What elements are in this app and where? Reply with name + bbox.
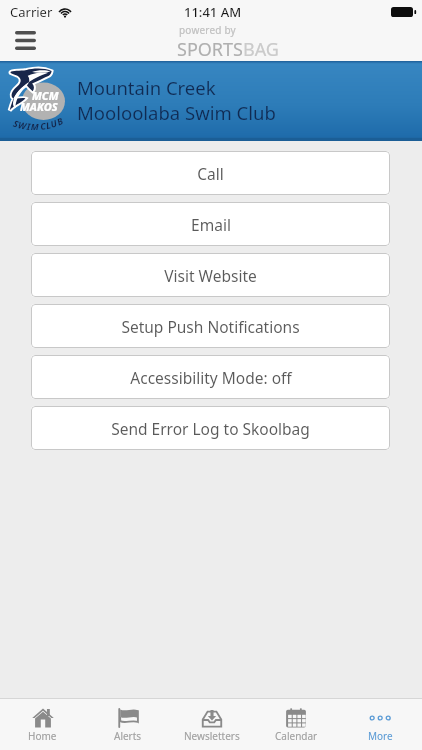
staticText: 11:41 AM xyxy=(184,3,242,21)
button[interactable]: More xyxy=(338,699,422,750)
staticText: Accessibility Mode: off xyxy=(130,367,292,388)
staticText: Setup Push Notifications xyxy=(121,316,300,337)
staticText: Mountain Creek xyxy=(77,75,216,100)
staticText: Call xyxy=(197,163,224,184)
button[interactable]: Call xyxy=(31,151,390,195)
staticText: Home xyxy=(28,729,57,743)
staticText: SPORTS xyxy=(177,37,243,62)
button[interactable]: Setup Push Notifications xyxy=(31,304,390,348)
button[interactable]: Send Error Log to Skoolbag xyxy=(31,406,390,450)
button[interactable]: Email xyxy=(31,202,390,246)
staticText: Newsletters xyxy=(184,729,240,743)
staticText: Mooloolaba Swim Club xyxy=(77,100,276,125)
button[interactable]: Newsletters xyxy=(170,699,254,750)
button[interactable]: Alerts xyxy=(85,699,170,750)
staticText: Email xyxy=(191,214,231,235)
button[interactable]: Menu xyxy=(9,25,42,56)
staticText: Visit Website xyxy=(164,265,257,286)
staticText: Carrier xyxy=(10,3,53,21)
staticText: MCM xyxy=(32,88,59,103)
button[interactable]: Home xyxy=(0,699,85,750)
staticText: MAKOS xyxy=(20,99,58,114)
staticText: Alerts xyxy=(114,729,142,743)
staticText: Send Error Log to Skoolbag xyxy=(111,418,310,439)
staticText: More xyxy=(368,729,393,743)
button[interactable]: Accessibility Mode: off xyxy=(31,355,390,399)
button[interactable]: Visit Website xyxy=(31,253,390,297)
staticText: Calendar xyxy=(275,729,318,743)
staticText: powered by xyxy=(179,23,236,37)
staticText: BAG xyxy=(243,37,279,62)
button[interactable]: Calendar xyxy=(254,699,338,750)
